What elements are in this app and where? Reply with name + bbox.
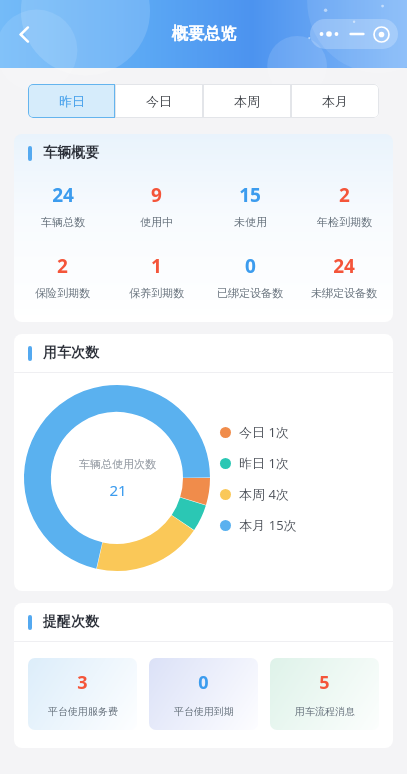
staticText: 平台使用服务费 [48, 705, 118, 718]
button[interactable]: 2 [16, 253, 109, 300]
staticText: 用车流程消息 [295, 705, 355, 718]
button[interactable]: 0 [203, 253, 297, 300]
button[interactable]: 0 [149, 658, 258, 730]
button[interactable]: 1 [109, 253, 203, 300]
staticText: 15 [239, 182, 261, 208]
button[interactable]: 昨日 1次 [220, 454, 289, 472]
staticText: 已绑定设备数 [217, 286, 283, 300]
staticText: 概要总览 [172, 24, 236, 44]
staticText: 未使用 [234, 215, 267, 229]
staticText: 保养到期数 [129, 286, 184, 300]
button[interactable]: 本周 4次 [220, 485, 289, 503]
staticText: 9 [151, 182, 162, 208]
staticText: 年检到期数 [317, 215, 372, 229]
button[interactable]: 昨日 [28, 84, 115, 118]
button[interactable]: 今日 [115, 84, 203, 118]
staticText: 昨日 [59, 93, 85, 109]
button[interactable]: 本月 15次 [220, 516, 297, 534]
button[interactable]: 5 [270, 658, 379, 730]
staticText: 使用中 [140, 215, 173, 229]
staticText: 24 [52, 182, 74, 208]
staticText: 平台使用到期 [174, 705, 234, 718]
staticText: 2 [339, 182, 350, 208]
staticText: 0 [198, 670, 209, 695]
button[interactable]: 3 [28, 658, 137, 730]
staticText: 本周 4次 [239, 485, 289, 503]
staticText: 1 [151, 253, 162, 279]
staticText: 21 [109, 480, 127, 500]
staticText: 24 [333, 253, 355, 279]
button[interactable]: 本月 [291, 84, 379, 118]
staticText: 今日 1次 [239, 423, 289, 441]
button[interactable]: Mini program menu [310, 19, 398, 49]
staticText: 保险到期数 [35, 286, 90, 300]
staticText: 本月 15次 [239, 516, 297, 534]
button[interactable]: 24 [297, 253, 391, 300]
staticText: 未绑定设备数 [311, 286, 377, 300]
staticText: 5 [319, 670, 330, 695]
button[interactable]: 15 [203, 182, 297, 229]
staticText: 提醒次数 [43, 613, 99, 631]
staticText: 3 [77, 670, 88, 695]
button[interactable]: 今日 1次 [220, 423, 289, 441]
staticText: 车辆概要 [43, 144, 99, 162]
staticText: 本周 [234, 93, 260, 109]
staticText: 本月 [322, 93, 348, 109]
staticText: 用车次数 [43, 344, 99, 362]
staticText: 今日 [146, 93, 172, 109]
button[interactable]: 9 [109, 182, 203, 229]
button[interactable]: 2 [297, 182, 391, 229]
button[interactable]: 本周 [203, 84, 291, 118]
button[interactable]: 24 [16, 182, 109, 229]
staticText: 0 [245, 253, 256, 279]
staticText: 车辆总数 [41, 215, 85, 229]
staticText: 车辆总使用次数 [79, 457, 156, 471]
staticText: 昨日 1次 [239, 454, 289, 472]
staticText: 2 [57, 253, 68, 279]
button[interactable]: Back [6, 16, 42, 52]
